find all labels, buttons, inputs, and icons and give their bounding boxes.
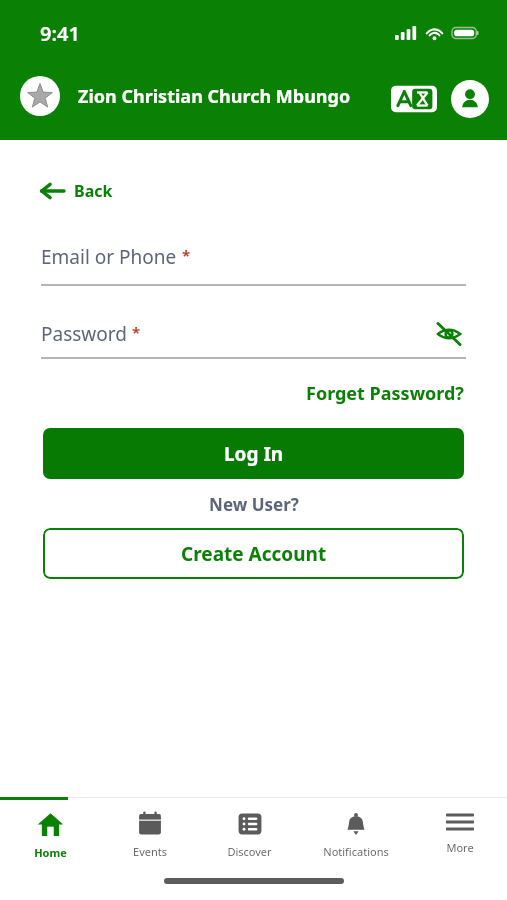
button[interactable]: Create Account	[43, 528, 464, 579]
staticText: Zion Christian Church Mbungo	[78, 84, 351, 109]
staticText: Create Account	[181, 541, 327, 567]
staticText: *	[132, 322, 141, 342]
button[interactable]: New User?	[209, 493, 299, 516]
staticText: Forget Password?	[306, 381, 464, 406]
button[interactable]: Email or Phone	[41, 244, 466, 286]
button[interactable]: Events	[100, 800, 200, 859]
button[interactable]: Back	[40, 180, 113, 202]
button[interactable]: Church logo	[20, 76, 60, 116]
staticText: Log In	[224, 441, 284, 467]
staticText: Password	[41, 321, 127, 347]
button[interactable]: More	[413, 800, 507, 855]
staticText: 9:41	[40, 20, 80, 47]
button[interactable]: Password	[41, 317, 466, 359]
staticText: Notifications	[323, 844, 389, 859]
button[interactable]: Translate	[391, 84, 437, 114]
button[interactable]: Log In	[43, 428, 464, 479]
staticText: Email or Phone	[41, 244, 177, 270]
staticText: *	[182, 245, 191, 265]
button[interactable]: Profile	[451, 80, 489, 118]
staticText: More	[446, 840, 474, 855]
button[interactable]: Forget Password?	[306, 381, 464, 406]
staticText: Discover	[227, 844, 272, 859]
staticText: New User?	[209, 493, 299, 516]
staticText: Events	[133, 844, 167, 859]
button[interactable]: Discover	[200, 800, 299, 859]
button[interactable]: Notifications	[299, 800, 413, 859]
button[interactable]: Show password	[432, 317, 466, 351]
button[interactable]: Home	[0, 800, 100, 860]
staticText: Back	[74, 180, 113, 202]
staticText: Home	[34, 845, 67, 860]
